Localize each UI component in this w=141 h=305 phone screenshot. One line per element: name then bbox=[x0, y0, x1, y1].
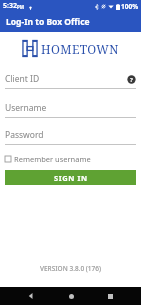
button[interactable]: Remember username bbox=[5, 154, 136, 164]
staticText: ? bbox=[130, 76, 133, 84]
staticText: Log-In to Box Office bbox=[6, 16, 90, 28]
button[interactable]: Back bbox=[23, 288, 39, 304]
staticText: 100% bbox=[121, 2, 139, 11]
staticText: Remember username bbox=[14, 154, 91, 164]
staticText: Password bbox=[5, 129, 136, 141]
staticText: HOMETOWN bbox=[41, 41, 119, 57]
button[interactable]: SIGN IN bbox=[5, 170, 136, 185]
staticText: VERSION 3.8.0 (176) bbox=[40, 264, 102, 273]
staticText: PM bbox=[17, 4, 25, 10]
staticText: 5:32 bbox=[3, 1, 17, 11]
button[interactable]: Help bbox=[127, 75, 136, 84]
button[interactable]: Home bbox=[63, 288, 79, 304]
staticText: Username bbox=[5, 102, 136, 114]
staticText: SIGN IN bbox=[54, 173, 88, 183]
button[interactable]: Recent apps bbox=[102, 288, 118, 304]
staticText: Client ID bbox=[5, 73, 127, 85]
